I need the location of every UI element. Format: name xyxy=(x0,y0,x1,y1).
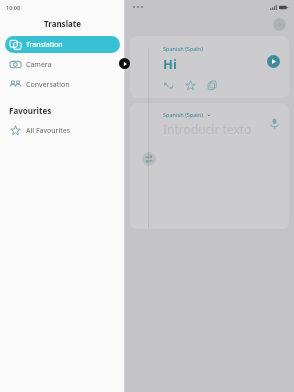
button[interactable]: Conversation xyxy=(5,76,120,93)
button[interactable]: Favourite xyxy=(185,80,196,91)
button[interactable]: Expand xyxy=(163,80,174,91)
staticText: Favourites xyxy=(9,105,52,116)
staticText: Spanish (Spain) xyxy=(163,111,204,118)
staticText: Translation xyxy=(26,40,63,50)
button[interactable]: Play translation xyxy=(267,55,280,68)
button[interactable]: Spanish (Spain) xyxy=(130,103,289,229)
staticText: All Favourites xyxy=(26,126,71,136)
staticText: Conversation xyxy=(26,80,70,90)
button[interactable]: Swap languages xyxy=(142,152,156,166)
staticText: Translate xyxy=(44,18,82,29)
button[interactable]: Translation xyxy=(5,36,120,53)
staticText: 10:00 xyxy=(6,4,21,11)
button[interactable]: Camera xyxy=(5,56,120,73)
staticText: Hi xyxy=(163,55,177,73)
staticText: Introducir texto xyxy=(163,121,252,137)
staticText: Spanish (Spain) xyxy=(163,45,204,52)
button[interactable]: Open panel xyxy=(119,58,130,69)
button[interactable]: Voice input xyxy=(268,117,281,130)
button[interactable]: More options xyxy=(273,18,286,31)
button[interactable]: All Favourites xyxy=(5,122,120,139)
staticText: Camera xyxy=(26,60,52,70)
button[interactable]: Spanish (Spain) xyxy=(130,36,289,98)
button[interactable]: Copy xyxy=(207,80,218,91)
